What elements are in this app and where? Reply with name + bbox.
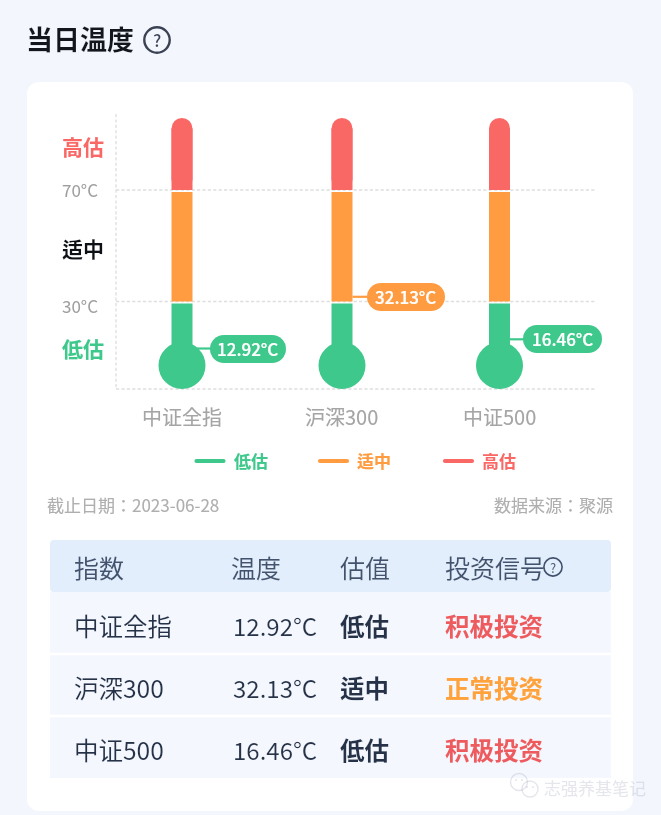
- button[interactable]: 投资信号说明: [543, 557, 563, 577]
- staticText: 12.92°C: [217, 336, 279, 361]
- staticText: 32.13°C: [233, 670, 318, 705]
- staticText: ?: [550, 558, 557, 577]
- staticText: 低估: [62, 333, 104, 363]
- staticText: 适中: [62, 233, 104, 263]
- staticText: 温度: [231, 549, 282, 585]
- staticText: 高估: [482, 448, 516, 473]
- staticText: 中证500: [74, 732, 164, 767]
- staticText: 30°C: [62, 293, 99, 318]
- staticText: 数据来源：聚源: [494, 492, 613, 517]
- staticText: 中证全指: [142, 402, 222, 431]
- staticText: 估值: [340, 549, 391, 585]
- staticText: 截止日期：2023-06-28: [47, 492, 220, 517]
- staticText: 志强养基笔记: [544, 775, 646, 800]
- staticText: 沪深300: [305, 402, 379, 431]
- button[interactable]: 温度说明: [143, 26, 171, 54]
- staticText: 当日温度: [26, 19, 134, 58]
- staticText: 70°C: [62, 177, 99, 202]
- staticText: 高估: [62, 131, 104, 161]
- staticText: 中证500: [463, 402, 537, 431]
- staticText: 32.13°C: [375, 284, 437, 309]
- staticText: 16.46°C: [532, 326, 594, 351]
- staticText: 低估: [340, 608, 389, 643]
- staticText: 投资信号: [445, 549, 546, 585]
- button[interactable]: 16.46°C: [523, 325, 602, 353]
- staticText: ?: [153, 27, 162, 52]
- staticText: 12.92°C: [233, 608, 318, 643]
- staticText: 适中: [357, 448, 391, 473]
- staticText: 正常投资: [445, 670, 543, 705]
- staticText: 适中: [340, 670, 389, 705]
- staticText: 积极投资: [445, 732, 543, 767]
- staticText: 积极投资: [445, 608, 543, 643]
- staticText: 低估: [340, 732, 389, 767]
- staticText: 16.46°C: [233, 732, 318, 767]
- button[interactable]: 12.92°C: [210, 335, 286, 363]
- button[interactable]: 32.13°C: [367, 283, 445, 311]
- staticText: 指数: [74, 549, 125, 585]
- staticText: 低估: [234, 448, 268, 473]
- staticText: 中证全指: [74, 608, 172, 643]
- staticText: 沪深300: [74, 670, 164, 705]
